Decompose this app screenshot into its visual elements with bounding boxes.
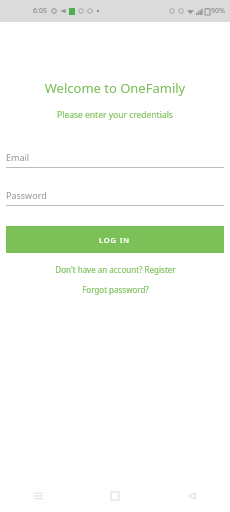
staticText: LOG IN [99, 235, 131, 245]
button[interactable]: Don't have an account? Register [0, 262, 230, 277]
button[interactable]: LOG IN [6, 226, 224, 253]
staticText: Please enter your credentials [0, 109, 230, 121]
staticText: Welcome to OneFamily [0, 79, 230, 97]
button[interactable]: Password [6, 189, 224, 206]
button[interactable]: Forgot password? [0, 282, 230, 297]
staticText: Email [6, 151, 30, 163]
staticText: Password [6, 189, 47, 201]
staticText: 90% [211, 6, 225, 16]
staticText: Don't have an account? Register [55, 264, 176, 275]
staticText: 6:05 [33, 6, 47, 16]
button[interactable]: Email [6, 151, 224, 168]
button[interactable]: Home [76, 480, 153, 512]
staticText: Forgot password? [82, 284, 149, 295]
